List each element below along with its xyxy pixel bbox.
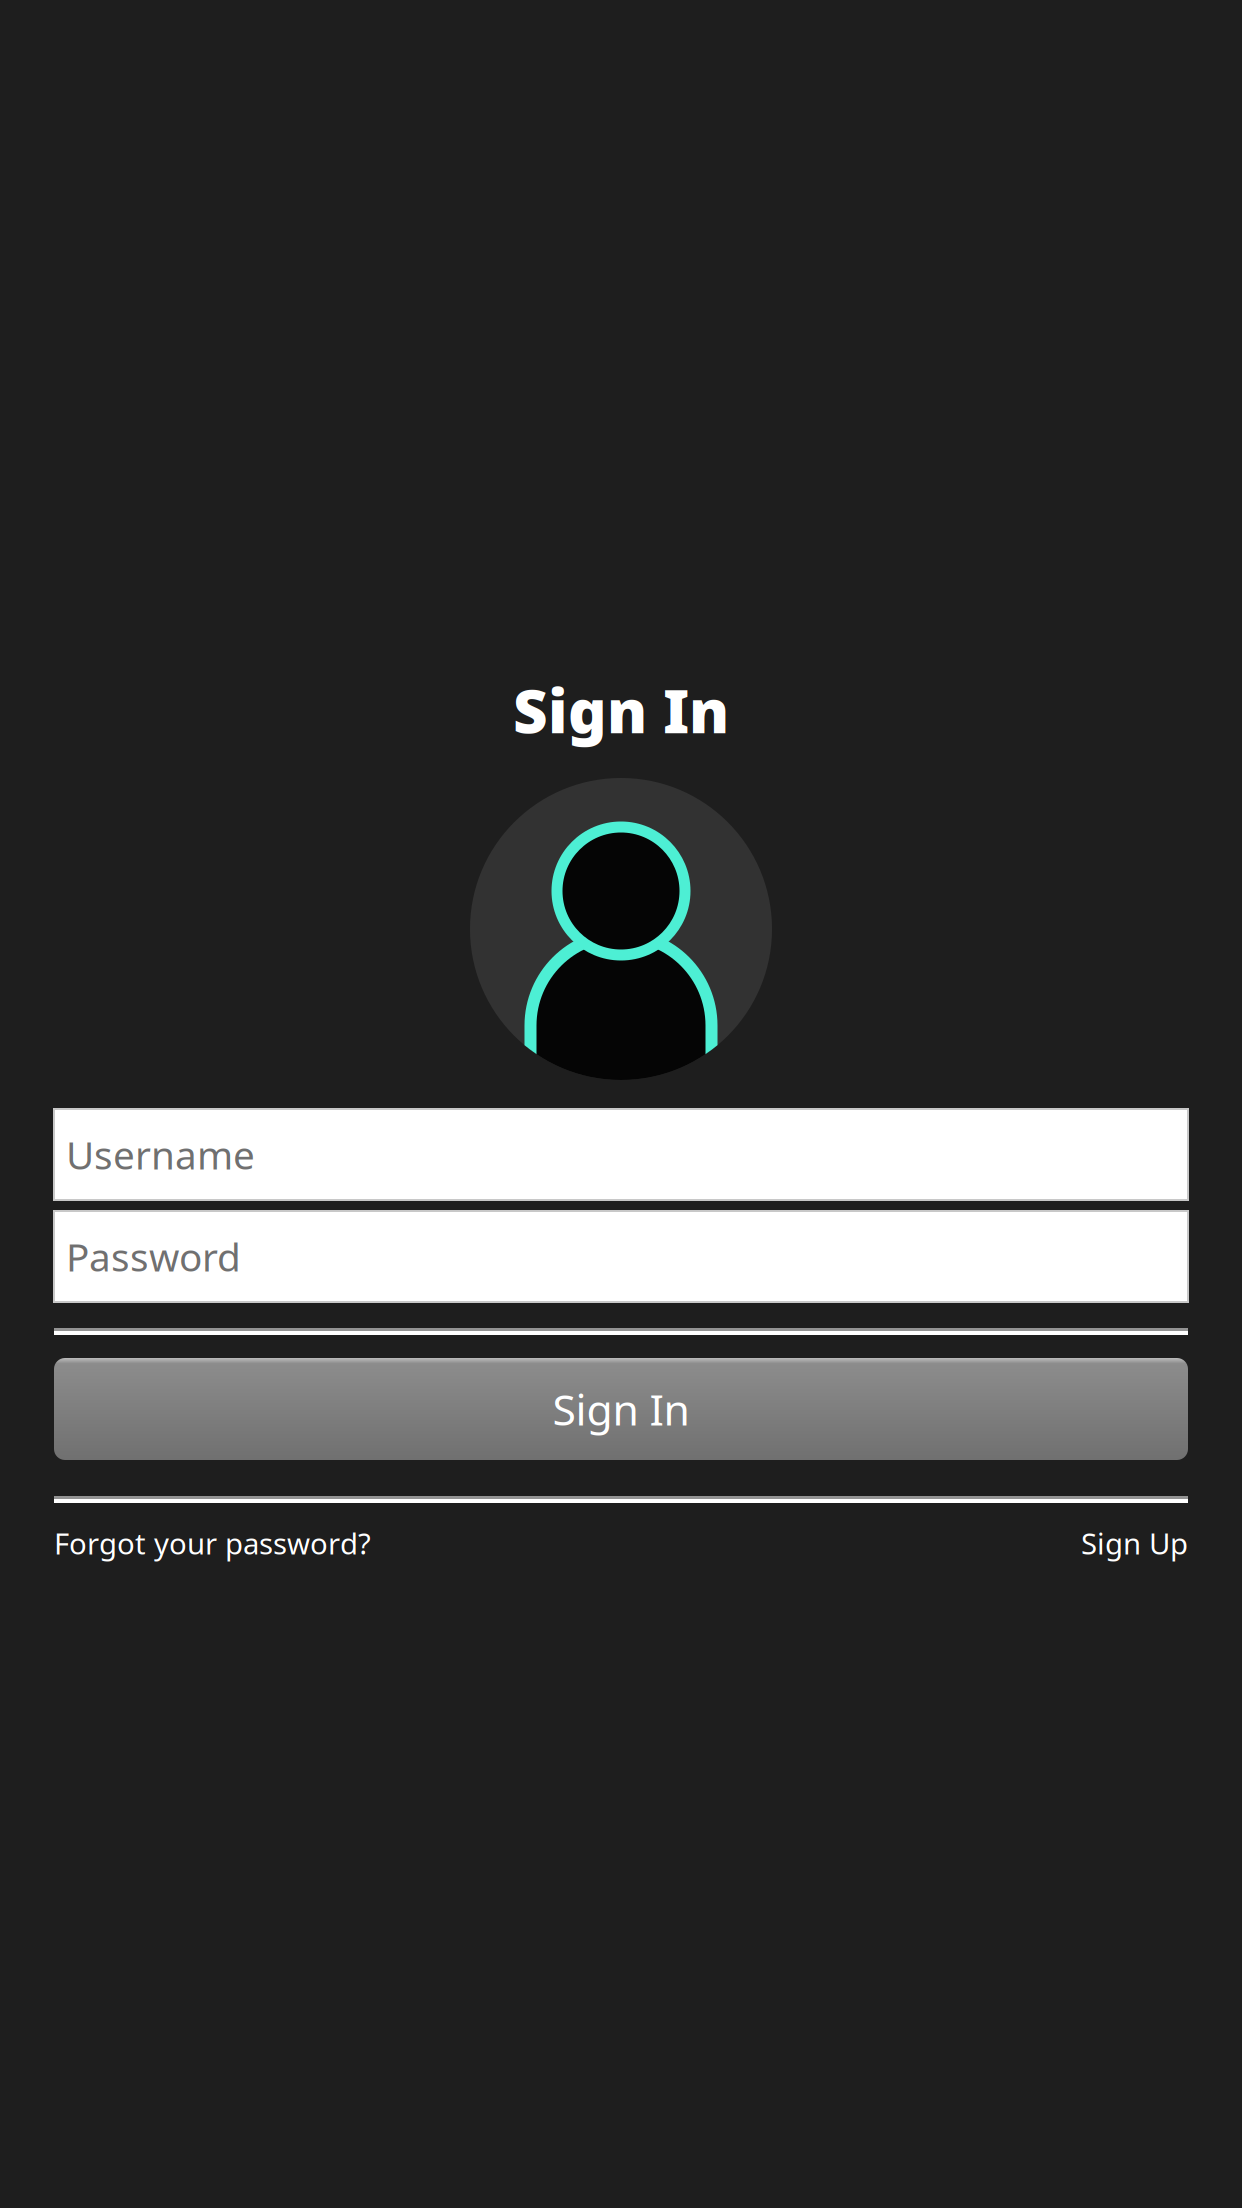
button[interactable]: Username	[54, 1109, 1188, 1200]
staticText: Sign In	[552, 1381, 689, 1437]
button[interactable]: Sign Up	[1081, 1523, 1188, 1563]
button[interactable]: Forgot your password?	[54, 1523, 371, 1563]
staticText: Sign Up	[1081, 1523, 1188, 1562]
button[interactable]: Sign In	[54, 1358, 1188, 1460]
staticText: Password	[66, 1231, 241, 1282]
button[interactable]: Password	[54, 1211, 1188, 1302]
staticText: Sign In	[513, 670, 729, 750]
staticText: Forgot your password?	[54, 1523, 371, 1562]
staticText: Username	[66, 1129, 255, 1180]
